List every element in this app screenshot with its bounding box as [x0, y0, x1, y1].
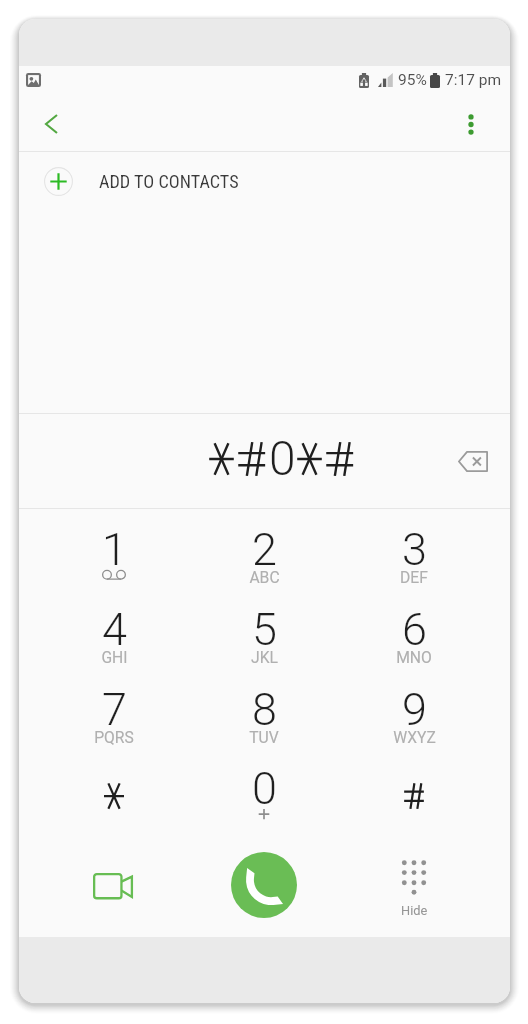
- staticText: 4: [102, 603, 127, 656]
- staticText: DEF: [400, 568, 428, 586]
- button[interactable]: 8: [204, 669, 324, 749]
- button[interactable]: 0: [204, 748, 324, 828]
- button[interactable]: 6: [354, 589, 474, 669]
- staticText: 5: [252, 603, 277, 656]
- button[interactable]: Video call: [54, 828, 174, 937]
- staticText: ABC: [249, 568, 280, 586]
- button[interactable]: 5: [204, 589, 324, 669]
- staticText: 6: [402, 603, 427, 656]
- button[interactable]: 4: [54, 589, 174, 669]
- button[interactable]: More options: [445, 98, 497, 150]
- button[interactable]: Back: [24, 98, 76, 150]
- staticText: 2: [252, 523, 277, 576]
- button[interactable]: Call: [231, 852, 297, 918]
- button[interactable]: 3: [354, 509, 474, 589]
- staticText: 1: [102, 523, 127, 576]
- staticText: 3: [402, 523, 427, 576]
- button[interactable]: 7: [54, 669, 174, 749]
- button[interactable]: Hide keypad: [354, 828, 474, 937]
- staticText: TUV: [249, 728, 279, 746]
- staticText: ADD TO CONTACTS: [99, 171, 239, 192]
- staticText: 0: [252, 762, 277, 815]
- staticText: PQRS: [94, 728, 134, 746]
- staticText: JKL: [251, 648, 278, 666]
- staticText: 7: [102, 683, 127, 736]
- button[interactable]: Backspace: [446, 434, 500, 488]
- button[interactable]: Star: [54, 748, 174, 828]
- staticText: Hide: [401, 903, 428, 918]
- button[interactable]: ADD TO CONTACTS: [19, 152, 510, 214]
- button[interactable]: Pound: [354, 748, 474, 828]
- staticText: GHI: [101, 648, 128, 666]
- staticText: MNO: [396, 648, 432, 666]
- staticText: 7:17 pm: [445, 71, 502, 89]
- staticText: 9: [402, 683, 427, 736]
- staticText: 95%: [398, 71, 427, 89]
- staticText: 8: [252, 683, 277, 736]
- button[interactable]: 1: [54, 509, 174, 589]
- button[interactable]: 9: [354, 669, 474, 749]
- staticText: 0: [269, 430, 296, 486]
- staticText: WXYZ: [393, 728, 436, 746]
- button[interactable]: 2: [204, 509, 324, 589]
